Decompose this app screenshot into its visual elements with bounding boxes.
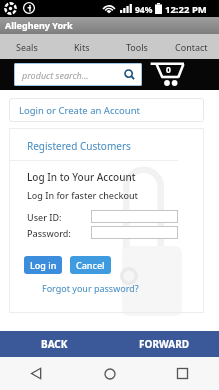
staticText: FORWARD: [139, 337, 190, 351]
button[interactable]: FORWARD: [109, 331, 219, 357]
staticText: Password:: [27, 227, 71, 239]
staticText: 0: [166, 64, 171, 76]
staticText: Registered Customers: [27, 139, 131, 153]
staticText: Cancel: [76, 259, 105, 271]
staticText: Tools: [126, 41, 148, 53]
button[interactable]: Log in: [24, 256, 62, 274]
staticText: product search...: [22, 69, 89, 81]
button[interactable]: [91, 210, 178, 223]
staticText: 12:22 PM: [165, 3, 207, 16]
staticText: Log in: [30, 259, 57, 271]
staticText: 94%: [135, 4, 153, 16]
button[interactable]: Kits: [54, 34, 109, 59]
staticText: BACK: [41, 337, 68, 351]
button[interactable]: Recent apps: [146, 357, 219, 390]
button[interactable]: Home: [73, 357, 146, 390]
button[interactable]: [91, 226, 178, 239]
button[interactable]: Cancel: [70, 256, 111, 274]
button[interactable]: Tools: [109, 34, 164, 59]
staticText: User ID:: [27, 211, 62, 223]
button[interactable]: Login or Create an Account: [9, 98, 204, 122]
button[interactable]: Seals: [0, 34, 54, 59]
staticText: Contact: [175, 41, 208, 53]
button[interactable]: Back: [0, 357, 73, 390]
button[interactable]: Forgot your password?: [42, 282, 139, 294]
button[interactable]: Contact: [164, 34, 219, 59]
staticText: Seals: [16, 41, 38, 53]
staticText: Kits: [74, 41, 90, 53]
button[interactable]: Shopping cart: [150, 59, 184, 90]
staticText: Allegheny York: [5, 19, 73, 31]
staticText: Log In for faster checkout: [27, 189, 139, 201]
staticText: Login or Create an Account: [19, 104, 140, 117]
button[interactable]: BACK: [0, 331, 109, 357]
button[interactable]: product search...: [14, 63, 142, 86]
staticText: Log In to Your Account: [27, 170, 136, 184]
